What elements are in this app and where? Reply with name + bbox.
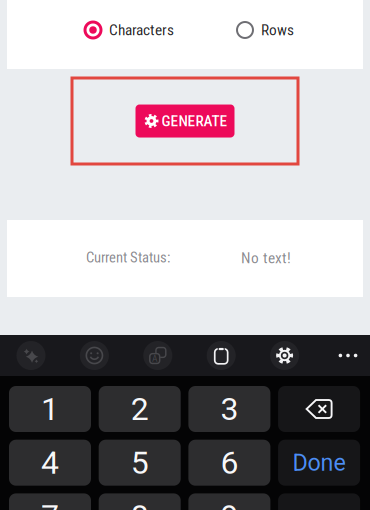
staticText: A <box>152 353 157 364</box>
staticText: No text! <box>241 249 291 267</box>
button[interactable]: 5 <box>99 440 181 486</box>
button[interactable]: 9 <box>188 493 270 510</box>
button[interactable]: 1 <box>9 386 91 432</box>
button[interactable]: Emoji <box>74 335 114 376</box>
staticText: GENERATE <box>161 112 227 130</box>
button[interactable]: 7 <box>9 493 91 510</box>
button[interactable]: Rows <box>236 21 294 39</box>
staticText: Rows <box>261 21 294 39</box>
button[interactable]: Characters <box>84 21 174 39</box>
staticText: 7 <box>41 498 59 510</box>
staticText: 8 <box>131 498 149 510</box>
button[interactable]: 8 <box>99 493 181 510</box>
button[interactable]: Done <box>278 440 360 486</box>
button[interactable]: 3 <box>188 386 270 432</box>
button[interactable]: 2 <box>99 386 181 432</box>
staticText: Characters <box>109 21 174 39</box>
staticText: 1 <box>41 390 59 428</box>
button[interactable]: Clipboard <box>201 335 241 376</box>
staticText: Current Status: <box>86 249 170 266</box>
staticText: 2 <box>131 390 149 428</box>
button[interactable]: Translate <box>138 335 178 376</box>
staticText: 6 <box>220 444 238 481</box>
staticText: Done <box>293 449 346 476</box>
button[interactable]: Delete <box>278 386 360 432</box>
button[interactable]: More <box>328 335 368 376</box>
staticText: 3 <box>220 390 238 428</box>
button[interactable]: GENERATE <box>135 104 234 137</box>
button[interactable]: Settings <box>265 335 305 376</box>
staticText: 4 <box>41 444 59 481</box>
staticText: 9 <box>220 498 238 510</box>
button[interactable]: 6 <box>188 440 270 486</box>
button[interactable]: Magic <box>11 335 51 376</box>
button[interactable]: 4 <box>9 440 91 486</box>
staticText: 5 <box>131 444 149 481</box>
